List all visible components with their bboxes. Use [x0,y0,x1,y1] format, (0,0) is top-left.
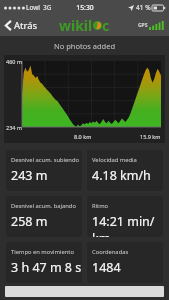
button[interactable]: Desnivel acum. bajando [6,196,82,237]
staticText: 1484 [92,259,121,276]
staticText: GPS [138,22,148,29]
staticText: 3 h 47 m 8 s [11,259,82,276]
button[interactable]: Desnivel acum. subiendo [6,150,82,191]
staticText: 234 m [6,124,23,131]
staticText: wikil [59,16,93,35]
staticText: Desnivel acum. subiendo [11,156,80,164]
staticText: 8.0 km [74,133,92,140]
staticText: 3G [43,3,52,12]
button[interactable]: Ritmo [87,196,163,237]
staticText: 14:21 min/km [92,213,163,237]
staticText: 258 m [11,213,48,230]
button[interactable]: Tiempo en movimiento [6,242,82,283]
staticText: Lowi [26,3,40,12]
staticText: 15.9 km [140,133,161,140]
staticText: Velocidad media [92,156,137,164]
staticText: Tiempo en movimiento [11,248,74,256]
other: GPS signal [138,21,165,30]
button[interactable]: Coordenadas [87,242,163,283]
staticText: 460 m [6,58,23,65]
button[interactable]: 460 m [4,55,165,143]
button[interactable]: Velocidad media [87,150,163,191]
staticText: 15:30 [76,3,94,12]
staticText: Desnivel acum. bajando [11,202,76,210]
staticText: Coordenadas [92,248,129,256]
staticText: No photos added [0,41,169,51]
staticText: 4.18 km/h [92,167,151,184]
staticText: 41 % [136,3,151,12]
button[interactable]: Atrás [3,17,40,34]
staticText: Atrás [14,19,38,32]
staticText: Ritmo [92,202,109,210]
staticText: 243 m [11,167,48,184]
staticText: c [102,16,110,35]
